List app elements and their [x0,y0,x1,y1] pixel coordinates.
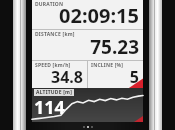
staticText: 02:09:15 [59,2,139,29]
staticText: DISTANCE [km] [35,31,75,38]
staticText: 75.23 [90,34,139,60]
button[interactable]: SPEED [km/h] [32,61,87,88]
staticText: SPEED [km/h] [35,62,71,69]
staticText: 114 [34,95,65,120]
button[interactable]: INCLINE [%] [88,61,143,88]
button[interactable]: DURATION [32,0,143,29]
staticText: ALTITUDE [m] [36,89,72,96]
staticText: 5 [129,66,139,88]
staticText: INCLINE [%] [91,62,124,69]
button[interactable]: Altitude chart [32,88,143,122]
staticText: DURATION [35,1,64,8]
staticText: 34.8 [51,66,83,88]
button[interactable]: DISTANCE [km] [32,30,143,60]
